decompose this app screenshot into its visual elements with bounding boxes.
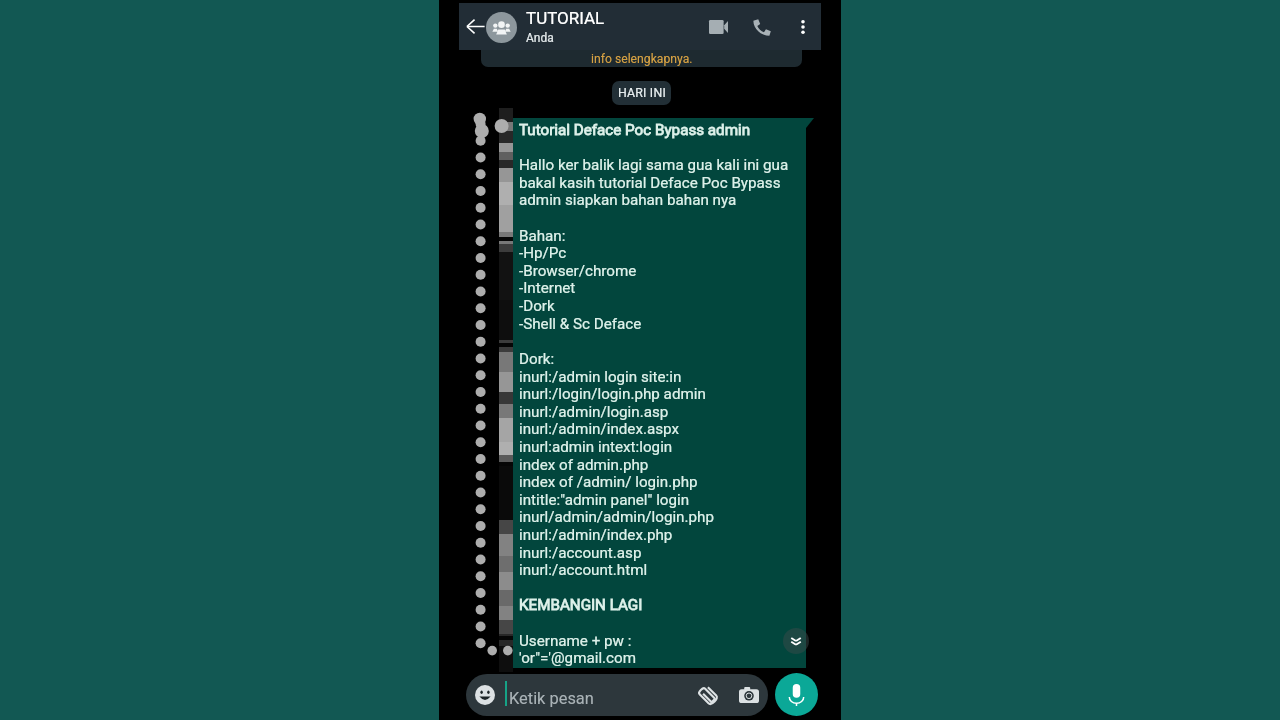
button[interactable]: Video call xyxy=(700,9,736,45)
staticText: admin siapkan bahan bahan nya xyxy=(519,191,737,209)
staticText: Username + pw : xyxy=(519,632,632,650)
button[interactable]: Back xyxy=(459,10,491,42)
staticText: Bahan: xyxy=(519,227,566,245)
button[interactable]: Call xyxy=(744,9,780,45)
staticText: inurl:/admin/index.aspx xyxy=(519,420,680,438)
staticText: bakal kasih tutorial Deface Poc Bypass xyxy=(519,174,781,192)
button[interactable]: info selengkapnya. xyxy=(481,30,802,67)
staticText: Anda xyxy=(526,31,554,45)
staticText: 'or"='@gmail.com xyxy=(519,649,637,667)
button[interactable]: Tutorial Deface Poc Bypass admin xyxy=(513,118,806,668)
staticText: Ketik pesan xyxy=(509,689,594,708)
staticText: Dork: xyxy=(519,350,555,368)
button[interactable]: Ketik pesan xyxy=(466,674,768,716)
staticText: inurl:/account.asp xyxy=(519,544,642,562)
staticText: inurl:/login/login.php admin xyxy=(519,385,706,403)
button[interactable]: More options xyxy=(788,12,818,42)
staticText: intitle:"admin panel" login xyxy=(519,491,690,509)
staticText: -Dork xyxy=(519,297,555,315)
staticText: Tutorial Deface Poc Bypass admin xyxy=(519,121,751,139)
staticText: -Internet xyxy=(519,279,576,297)
staticText: -Shell & Sc Deface xyxy=(519,315,642,333)
staticText: KEMBANGIN LAGI xyxy=(519,596,643,614)
staticText: index of /admin/ login.php xyxy=(519,473,698,491)
staticText: TUTORIAL xyxy=(526,8,605,28)
staticText: Hallo ker balik lagi sama gua kali ini g… xyxy=(519,156,789,174)
staticText: -Browser/chrome xyxy=(519,262,637,280)
staticText: inurl:/account.html xyxy=(519,561,648,579)
staticText: -Hp/Pc xyxy=(519,244,567,262)
staticText: index of admin.php xyxy=(519,456,649,474)
button[interactable]: Voice message xyxy=(775,673,818,716)
button[interactable]: Scroll to bottom xyxy=(783,628,809,654)
staticText: info selengkapnya. xyxy=(591,52,693,66)
button[interactable]: HARI INI xyxy=(612,81,671,105)
staticText: inurl:/admin/login.asp xyxy=(519,403,669,421)
staticText: HARI INI xyxy=(618,86,666,100)
staticText: inurl/admin/admin/login.php xyxy=(519,508,714,526)
staticText: inurl:/admin/index.php xyxy=(519,526,673,544)
staticText: inurl:/admin login site:in xyxy=(519,368,682,386)
staticText: inurl:admin intext:login xyxy=(519,438,673,456)
